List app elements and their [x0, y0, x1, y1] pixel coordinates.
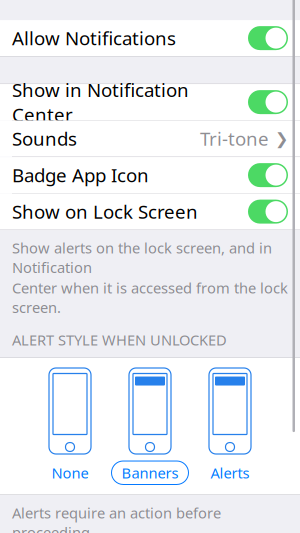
staticText: ❯ — [275, 129, 288, 148]
button[interactable]: None — [30, 368, 110, 484]
staticText: Show alerts on the lock screen, and in N… — [12, 238, 272, 277]
staticText: Banners — [121, 463, 178, 482]
staticText: Allow Notifications — [12, 26, 176, 50]
staticText: Show on Lock Screen — [12, 199, 198, 224]
button[interactable]: Allow Notifications — [0, 20, 300, 56]
staticText: Tri-tone — [200, 126, 269, 151]
staticText: Alerts require an action before proceedi… — [12, 503, 221, 533]
button[interactable]: Banners — [110, 368, 190, 484]
staticText: Alerts — [210, 463, 249, 482]
button[interactable]: Show on Lock Screen — [0, 194, 300, 230]
staticText: None — [51, 463, 88, 482]
button[interactable]: Alerts — [190, 368, 270, 484]
button[interactable]: Sounds — [0, 121, 300, 157]
button[interactable]: Badge App Icon — [0, 157, 300, 193]
staticText: Sounds — [12, 126, 77, 151]
staticText: ALERT STYLE WHEN UNLOCKED — [12, 330, 227, 349]
button[interactable]: Show in Notification Center — [0, 84, 300, 120]
staticText: Center when it is accessed from the lock… — [12, 278, 288, 317]
staticText: Badge App Icon — [12, 163, 149, 187]
staticText: Show in Notification Center — [12, 77, 189, 127]
